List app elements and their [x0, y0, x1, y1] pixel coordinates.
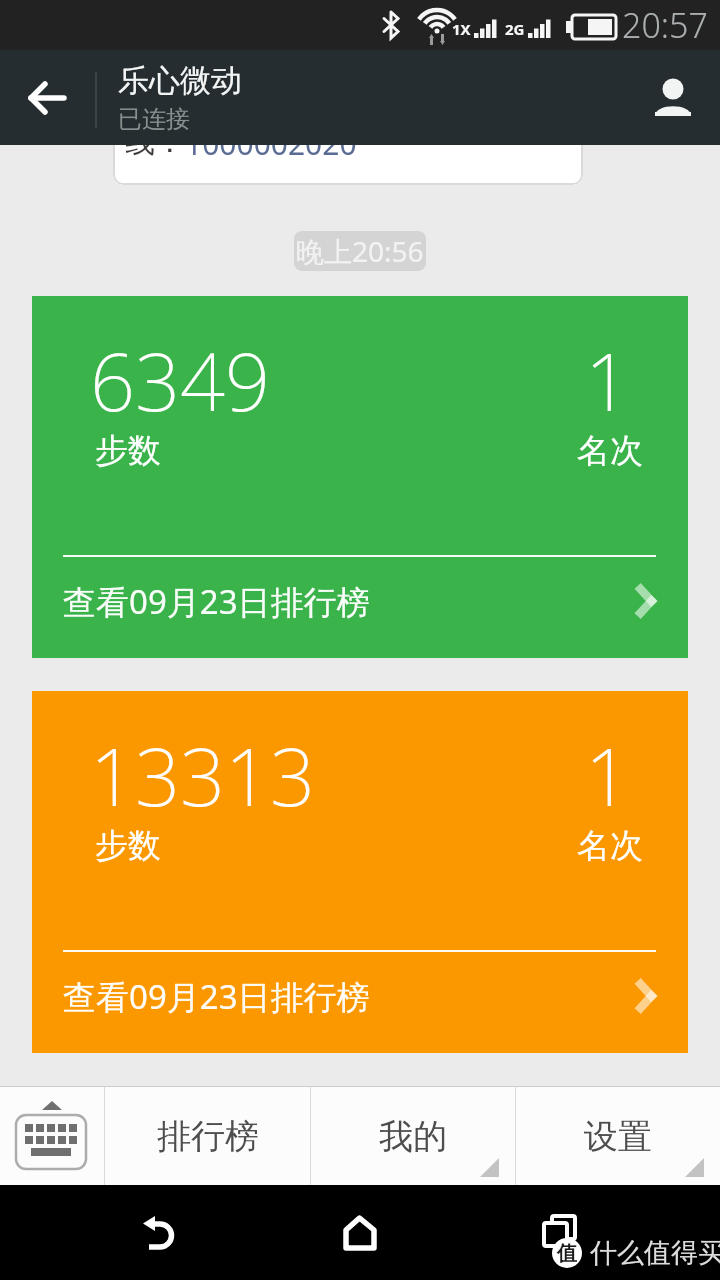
staticText: 排行榜 [157, 1115, 259, 1158]
staticText: 晚上20:56 [296, 232, 424, 270]
staticText: 2G [505, 19, 525, 39]
button[interactable]: 设置 [516, 1087, 720, 1185]
button[interactable]: 我的 [311, 1087, 515, 1185]
staticText: 线： [125, 145, 185, 161]
button[interactable] [625, 50, 720, 145]
staticText: 我的 [379, 1115, 447, 1158]
staticText: 1 [585, 327, 631, 435]
staticText: 6349 [90, 327, 271, 435]
button[interactable]: 13313 [32, 691, 688, 1053]
staticText: 名次 [577, 825, 643, 867]
staticText: 步数 [95, 825, 161, 867]
staticText: 1X [452, 19, 471, 39]
button[interactable]: 查看09月23日排行榜 [63, 557, 656, 645]
button[interactable] [0, 1087, 104, 1185]
staticText: 值 [557, 1241, 577, 1266]
button[interactable]: 排行榜 [105, 1087, 310, 1185]
staticText: 13313 [90, 722, 316, 830]
button[interactable] [300, 1185, 420, 1280]
staticText: 查看09月23日排行榜 [63, 579, 636, 624]
staticText: 名次 [577, 430, 643, 472]
button[interactable] [0, 50, 95, 145]
staticText: 步数 [95, 430, 161, 472]
staticText: 1 [585, 722, 631, 830]
button[interactable]: 6349 [32, 296, 688, 658]
staticText: 设置 [584, 1115, 652, 1158]
staticText: 什么值得买 [590, 1236, 720, 1270]
staticText: 已连接 [118, 104, 190, 134]
button[interactable] [103, 1185, 223, 1280]
staticText: 20:57 [622, 2, 708, 48]
staticText: 1000002020 [185, 145, 357, 164]
button[interactable] [500, 1185, 620, 1280]
staticText: 查看09月23日排行榜 [63, 974, 636, 1019]
staticText: 乐心微动 [118, 61, 242, 100]
button[interactable]: 查看09月23日排行榜 [63, 952, 656, 1040]
